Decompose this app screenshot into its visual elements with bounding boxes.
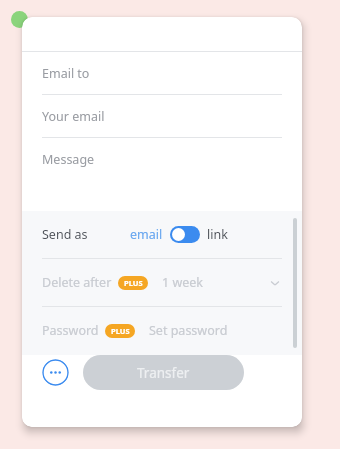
staticText: link (207, 226, 228, 243)
staticText: 1 week (162, 274, 204, 291)
staticText: Transfer (137, 364, 190, 382)
button[interactable]: Transfer (83, 355, 244, 390)
button[interactable]: Toggle send as email or link (170, 226, 200, 243)
staticText: Delete after (42, 274, 112, 291)
button[interactable]: More options (42, 359, 69, 386)
staticText: PLUS (124, 278, 143, 288)
staticText: PLUS (111, 326, 130, 336)
staticText: Message (42, 151, 95, 168)
staticText: Send as (42, 226, 88, 243)
button[interactable]: Message (22, 138, 302, 180)
other: Expand delete after options (268, 276, 282, 290)
staticText: Email to (42, 65, 90, 82)
staticText: email (130, 226, 163, 243)
button[interactable]: Your email (22, 95, 302, 138)
button[interactable]: Password (22, 307, 302, 354)
button[interactable]: Email to (22, 52, 302, 95)
staticText: Set password (149, 322, 228, 339)
staticText: Password (42, 322, 99, 339)
button[interactable]: Send as (22, 211, 302, 258)
staticText: Your email (42, 108, 105, 125)
button[interactable]: Delete after (22, 259, 302, 306)
